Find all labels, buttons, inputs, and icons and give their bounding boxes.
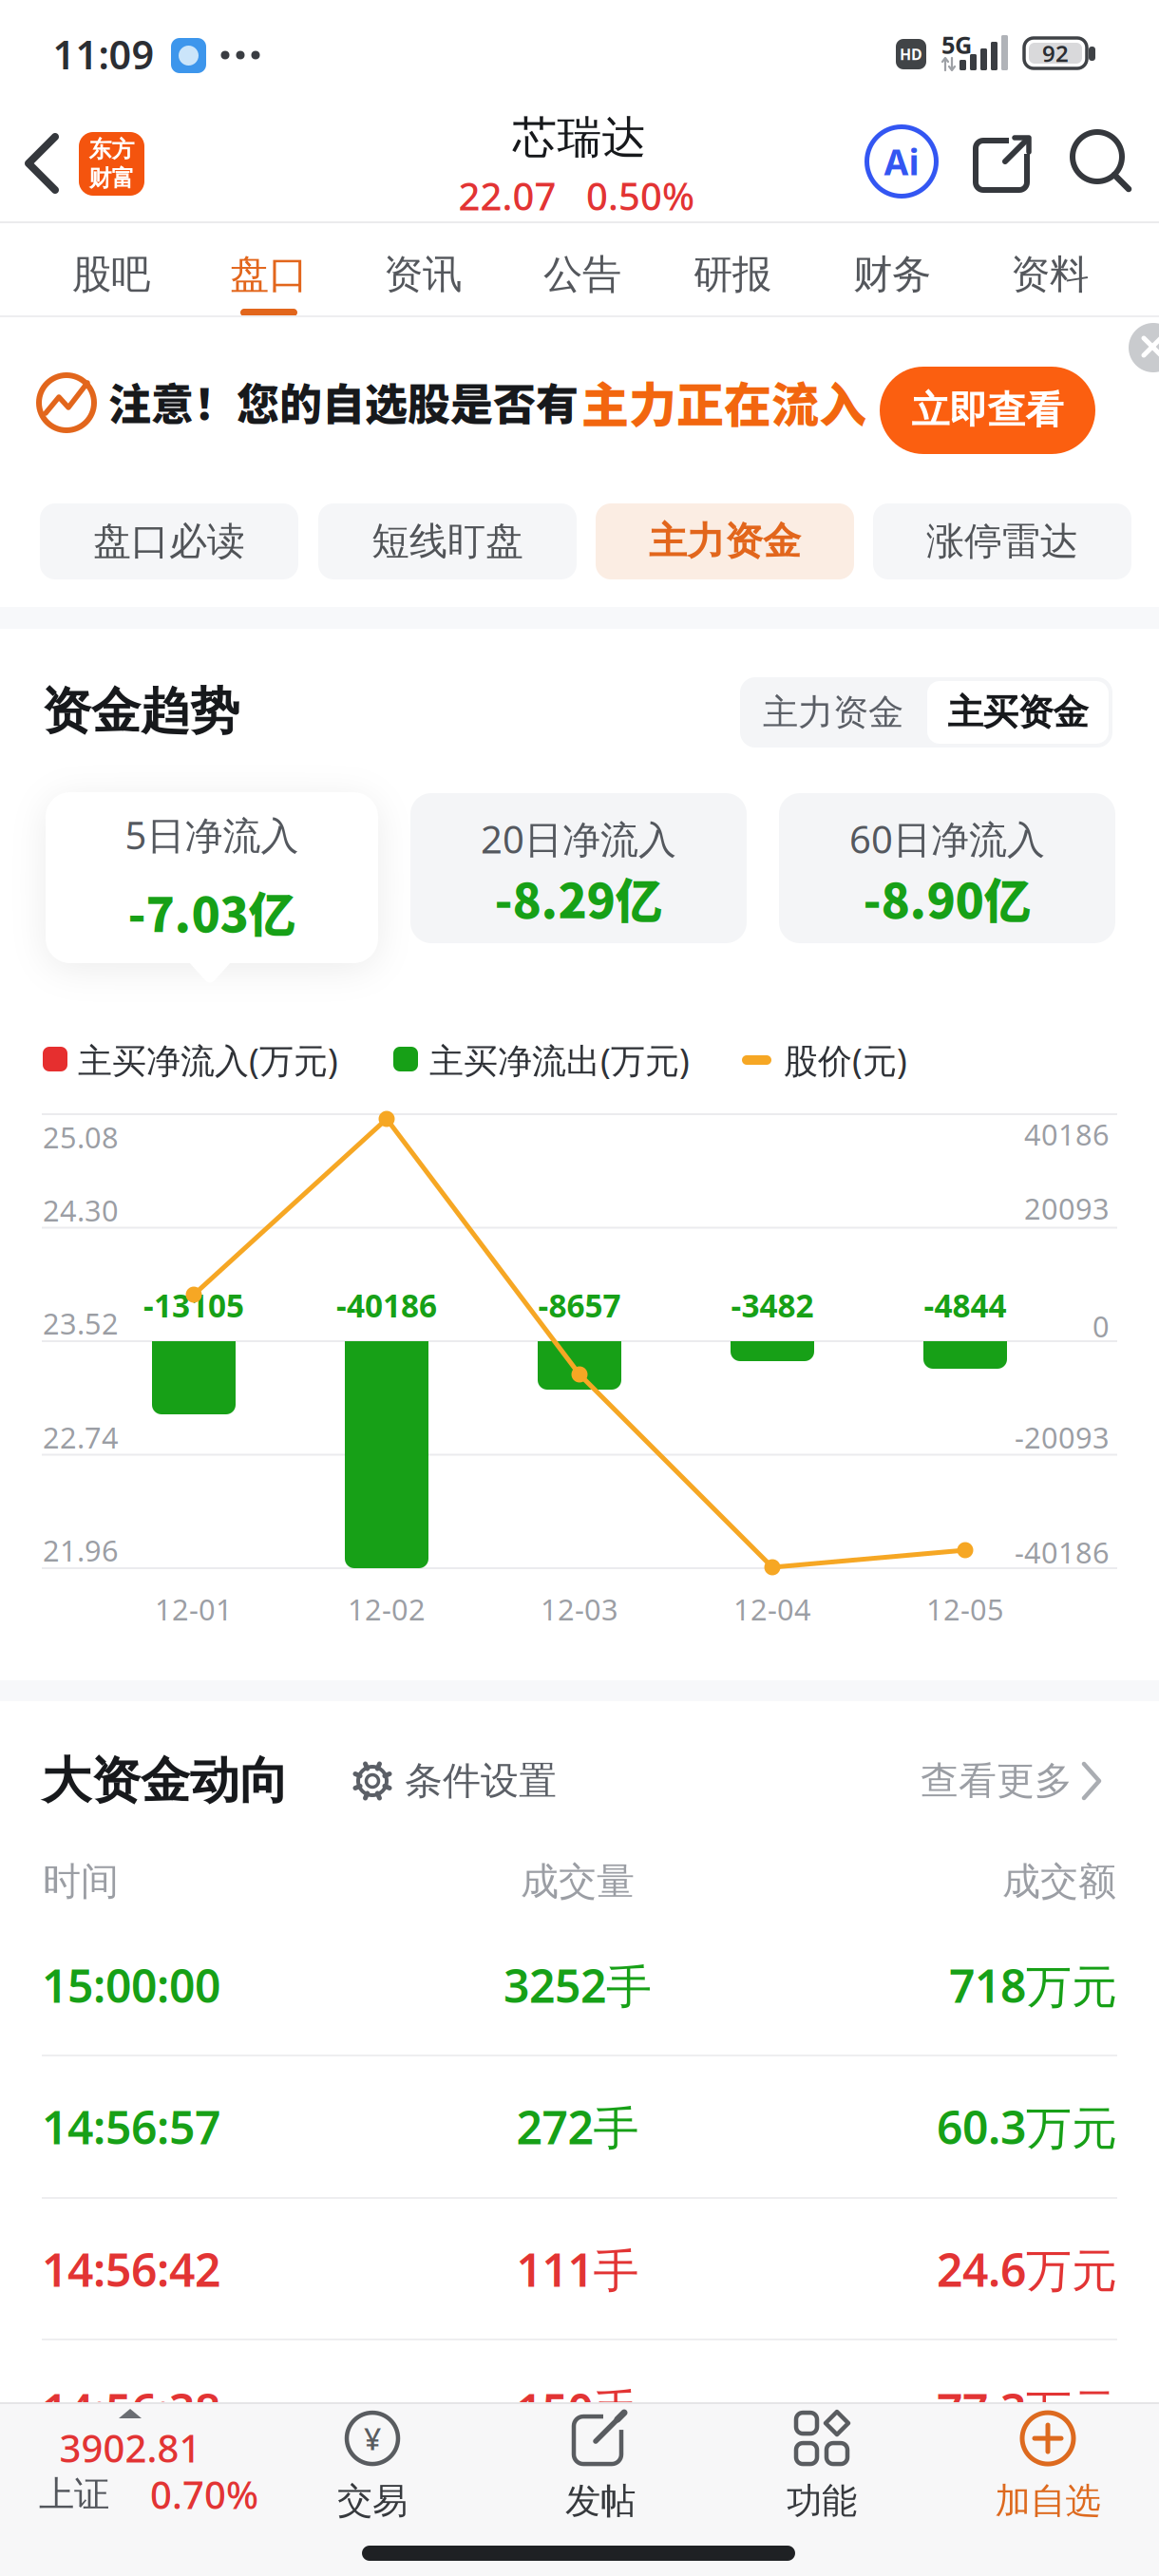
staticText: 研报 — [693, 250, 771, 299]
staticText: 25.08 — [43, 1118, 119, 1156]
staticText: 盘口 — [230, 250, 308, 299]
staticText: 加自选 — [995, 2479, 1101, 2523]
staticText: 3902.81 — [59, 2423, 201, 2473]
staticText: 资料 — [1011, 250, 1089, 299]
staticText: 60.3万元 — [937, 2096, 1117, 2157]
staticText: 0.70% — [150, 2469, 258, 2519]
staticText: 公告 — [543, 250, 621, 299]
staticText: 盘口必读 — [93, 518, 245, 565]
button[interactable]: 公告 — [516, 229, 649, 320]
staticText: -3482 — [731, 1284, 814, 1326]
button[interactable]: 搜索 — [1072, 131, 1132, 192]
staticText: 发帖 — [565, 2479, 636, 2523]
staticText: 功能 — [787, 2479, 857, 2523]
button[interactable]: 发帖 — [520, 2400, 681, 2533]
staticText: 5日净流入 — [125, 809, 299, 860]
button[interactable]: 5日净流入 — [46, 792, 378, 963]
button[interactable]: 财务 — [826, 229, 959, 320]
staticText: 92 — [1042, 38, 1069, 68]
staticText: 资讯 — [384, 250, 462, 299]
button[interactable]: 查看更多 — [921, 1752, 1105, 1809]
staticText: 主力资金 — [763, 691, 903, 734]
button[interactable]: 20日净流入 — [410, 793, 747, 943]
staticText: 涨停雷达 — [926, 518, 1078, 565]
staticText: 主买净流入(万元) — [78, 1037, 338, 1083]
staticText: -4844 — [924, 1284, 1007, 1326]
button[interactable]: 研报 — [666, 229, 799, 320]
button[interactable]: Ai助手 — [865, 125, 938, 198]
button[interactable]: 盘口 — [202, 229, 335, 320]
staticText: 主力正在流入 — [581, 367, 866, 436]
staticText: -8657 — [538, 1284, 621, 1326]
staticText: 11:09 — [53, 28, 154, 80]
button[interactable]: 主力资金 — [596, 503, 854, 579]
staticText: 财富 — [89, 164, 134, 192]
staticText: 条件设置 — [405, 1758, 557, 1804]
button[interactable]: 条件设置 — [351, 1752, 557, 1809]
staticText: -8.29亿 — [494, 863, 663, 932]
button[interactable]: 涨停雷达 — [873, 503, 1131, 579]
button[interactable]: 资料 — [983, 229, 1116, 320]
staticText: 财务 — [853, 250, 931, 299]
staticText: 主买资金 — [948, 691, 1088, 734]
staticText: 12-05 — [926, 1590, 1004, 1628]
staticText: 0.50% — [586, 170, 694, 221]
staticText: 15:00:00 — [42, 1955, 220, 2015]
staticText: -7.03亿 — [128, 877, 296, 946]
staticText: ¥ — [364, 2418, 381, 2459]
button[interactable]: 短线盯盘 — [318, 503, 577, 579]
staticText: 24.30 — [43, 1191, 119, 1229]
staticText: 交易 — [337, 2479, 408, 2523]
staticText: Ai — [884, 138, 919, 185]
staticText: 14:56:57 — [42, 2096, 220, 2157]
button[interactable]: 盘口必读 — [40, 503, 298, 579]
staticText: 272手 — [516, 2096, 639, 2157]
button[interactable]: 主买资金 — [927, 681, 1109, 744]
button[interactable]: 关闭 — [1129, 323, 1159, 372]
button[interactable]: 功能 — [741, 2400, 902, 2533]
button[interactable]: 立即查看 — [880, 367, 1095, 454]
staticText: 短线盯盘 — [371, 518, 523, 565]
staticText: 14:56:38 — [42, 2379, 220, 2440]
staticText: -40186 — [1015, 1533, 1110, 1571]
button[interactable]: 股吧 — [45, 229, 178, 320]
staticText: 资金趋势 — [42, 681, 239, 742]
staticText: 22.07 — [458, 170, 556, 221]
staticText: 12-04 — [733, 1590, 811, 1628]
staticText: 5G — [941, 29, 972, 61]
staticText: 查看更多 — [921, 1758, 1073, 1804]
button[interactable]: 返回 — [9, 116, 75, 211]
staticText: 77.3万元 — [937, 2379, 1117, 2440]
staticText: 成交量 — [521, 1858, 635, 1905]
button[interactable]: 东方财富 — [79, 132, 144, 196]
staticText: 时间 — [43, 1858, 119, 1905]
staticText: 东方 — [89, 135, 134, 163]
staticText: 立即查看 — [912, 387, 1064, 434]
button[interactable]: 主力资金 — [740, 677, 926, 748]
staticText: 12-02 — [348, 1590, 426, 1628]
staticText: 成交额 — [1002, 1858, 1116, 1905]
staticText: 40186 — [1024, 1115, 1110, 1153]
staticText: 20093 — [1024, 1189, 1110, 1227]
staticText: 24.6万元 — [937, 2239, 1117, 2299]
staticText: HD — [900, 44, 922, 64]
button[interactable]: 资讯 — [356, 229, 489, 320]
staticText: 主买净流出(万元) — [429, 1037, 690, 1083]
staticText: 20日净流入 — [481, 813, 676, 864]
button[interactable]: 加自选 — [958, 2400, 1138, 2533]
button[interactable]: 3902.81 — [9, 2404, 275, 2537]
button[interactable]: 60日净流入 — [779, 793, 1115, 943]
staticText: 23.52 — [43, 1304, 119, 1342]
button[interactable]: ¥ — [292, 2400, 453, 2533]
button[interactable]: 分享 — [973, 133, 1034, 194]
staticText: 股价(元) — [784, 1037, 907, 1083]
staticText: 注意！您的自选股是否有 — [108, 371, 579, 433]
staticText: -40186 — [336, 1284, 437, 1326]
staticText: 22.74 — [43, 1418, 119, 1456]
staticText: 718万元 — [949, 1955, 1117, 2015]
staticText: 3252手 — [503, 1955, 652, 2015]
staticText: 芯瑞达 — [513, 110, 646, 165]
staticText: 21.96 — [43, 1531, 119, 1569]
staticText: 12-03 — [541, 1590, 618, 1628]
staticText: 14:56:42 — [42, 2239, 220, 2299]
